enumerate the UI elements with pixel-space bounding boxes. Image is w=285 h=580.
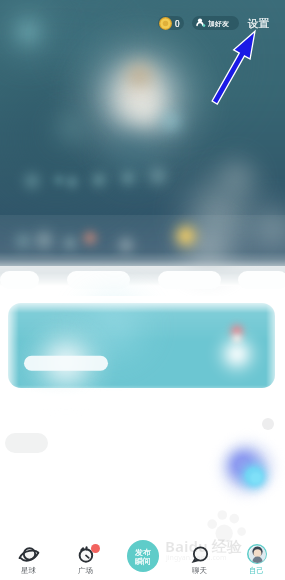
staticText: 0 <box>175 18 180 29</box>
button[interactable]: 星球 <box>0 538 57 580</box>
staticText: 聊天 <box>192 566 207 575</box>
staticText: 加好友 <box>208 19 229 28</box>
button[interactable]: 发布 瞬间 <box>127 540 159 572</box>
button[interactable] <box>158 271 221 289</box>
staticText: 广场 <box>78 566 93 575</box>
button[interactable]: 广场 <box>57 538 114 580</box>
staticText: 发布 瞬间 <box>135 547 151 566</box>
staticText: jingyan.baidu.com <box>166 553 227 563</box>
button[interactable]: 聊天 <box>171 538 228 580</box>
other: Annotation arrow <box>0 0 285 580</box>
button[interactable]: 加好友 <box>192 16 239 30</box>
staticText: Baidu 经验 <box>165 536 242 556</box>
button[interactable]: 自己 <box>228 538 285 580</box>
button[interactable] <box>67 271 130 289</box>
staticText: 自己 <box>249 566 264 575</box>
button[interactable] <box>5 433 48 453</box>
button[interactable] <box>0 296 285 408</box>
button[interactable] <box>0 271 39 289</box>
button[interactable]: 设置 <box>245 15 272 32</box>
staticText: 星球 <box>21 566 36 575</box>
button[interactable] <box>238 271 285 289</box>
button[interactable]: Coins 0 <box>158 16 184 30</box>
staticText: 设置 <box>248 17 269 30</box>
